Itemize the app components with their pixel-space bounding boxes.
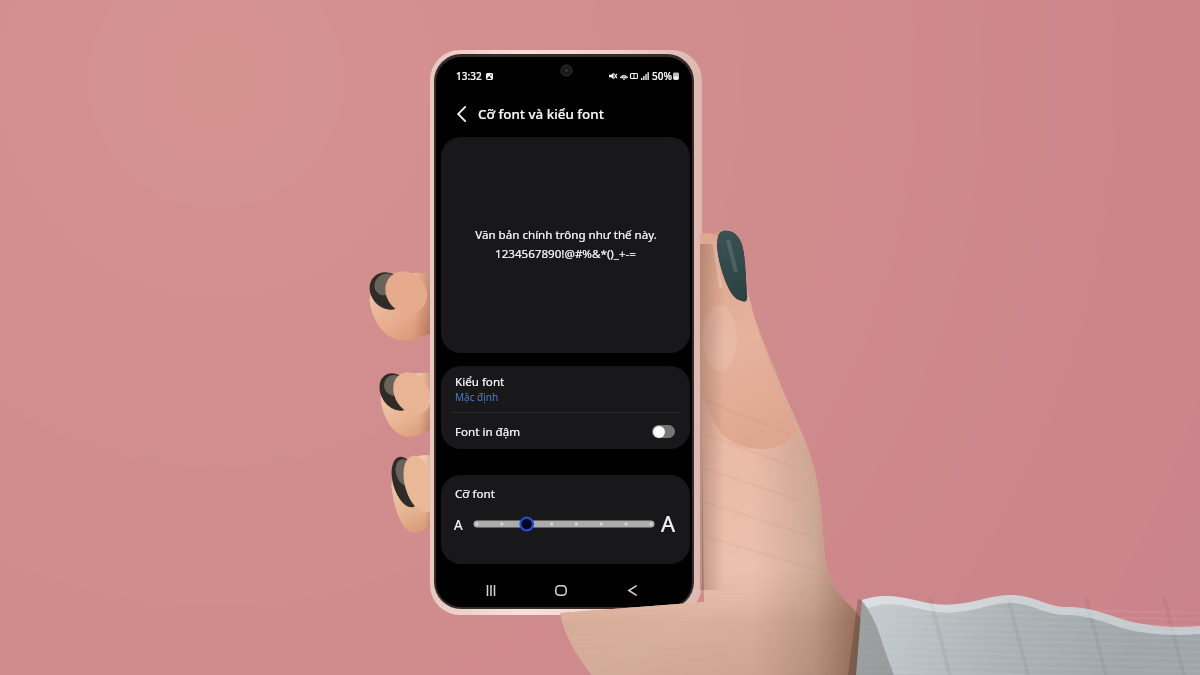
staticText: 50% [652, 69, 672, 83]
staticText: Mặc định [455, 390, 499, 404]
staticText: 13:32 [456, 69, 482, 83]
button[interactable]: Bold font toggle [652, 425, 675, 438]
button[interactable] [441, 366, 690, 412]
button[interactable]: Back [451, 103, 473, 125]
button[interactable] [441, 413, 690, 449]
button[interactable]: Font size slider [474, 515, 654, 533]
staticText: A [661, 508, 676, 538]
button[interactable]: Recents [474, 569, 508, 607]
staticText: Văn bản chính trông như thế này. [475, 227, 657, 243]
staticText: Font in đậm [455, 424, 521, 440]
staticText: 1234567890!@#%&*()_+-= [495, 246, 636, 262]
button[interactable]: Back [615, 569, 649, 607]
staticText: Cỡ font và kiểu font [478, 105, 604, 123]
staticText: A [454, 516, 463, 534]
staticText: Kiểu font [455, 374, 505, 390]
button[interactable]: Home [544, 569, 578, 607]
staticText: Cỡ font [455, 486, 495, 502]
